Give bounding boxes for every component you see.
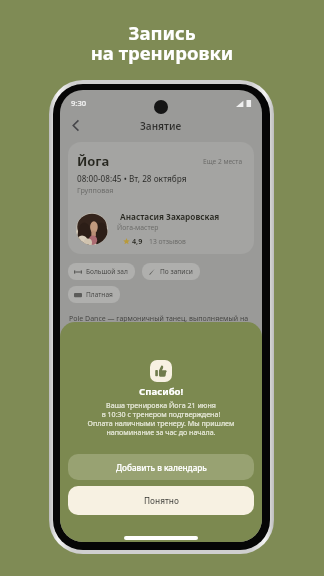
button[interactable]: Понятно xyxy=(68,486,254,515)
button[interactable]: Платная xyxy=(68,286,120,303)
staticText: Анастасия Захаровская xyxy=(120,211,220,222)
button[interactable]: Большой зал xyxy=(68,263,135,280)
staticText: По записи xyxy=(160,267,193,276)
staticText: 13 отзывов xyxy=(149,237,186,246)
button[interactable]: По записи xyxy=(142,263,200,280)
staticText: Запись на тренировки xyxy=(0,20,324,65)
staticText: Йога-мастер xyxy=(117,223,159,232)
staticText: Йога xyxy=(77,152,110,170)
staticText: Ваша тренировка Йога 21 июня в 10:30 с т… xyxy=(60,400,262,437)
button[interactable]: Back xyxy=(65,115,85,135)
button[interactable]: Добавить в календарь xyxy=(68,454,254,480)
staticText: Большой зал xyxy=(86,267,128,276)
staticText: Групповая xyxy=(77,185,114,195)
staticText: Платная xyxy=(86,290,113,299)
staticText: Pole Dance — гармоничный танец, выполняе… xyxy=(69,314,249,324)
staticText: Понятно xyxy=(144,495,179,506)
staticText: Спасибо! xyxy=(139,385,184,398)
staticText: Добавить в календарь xyxy=(116,462,207,473)
staticText: 4,9 xyxy=(132,236,143,246)
staticText: 08:00-08:45 • Вт, 28 октября xyxy=(77,173,187,184)
staticText: Еще 2 места xyxy=(203,157,243,166)
staticText: 9:30 xyxy=(71,98,87,108)
staticText: Занятие xyxy=(140,119,182,133)
